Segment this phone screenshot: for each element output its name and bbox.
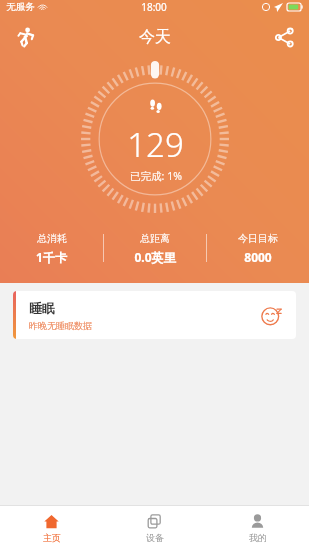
staticText: 设备 (146, 532, 164, 543)
staticText: 0.0英里 (134, 249, 176, 265)
button[interactable]: 总距离 (104, 232, 206, 265)
button[interactable]: 睡眠 (13, 291, 296, 339)
button[interactable]: 总消耗 (0, 232, 103, 265)
button[interactable]: 今日目标 (207, 232, 309, 265)
staticText: 已完成: 1% (130, 169, 182, 183)
staticText: 总消耗 (37, 232, 67, 245)
staticText: 129 (127, 122, 184, 167)
staticText: 无服务 (6, 1, 35, 13)
staticText: 18:00 (141, 0, 167, 14)
staticText: 昨晚无睡眠数据 (29, 320, 92, 331)
button[interactable]: 设备 (103, 506, 206, 550)
staticText: 今天 (139, 27, 171, 47)
button[interactable]: 主页 (0, 506, 103, 550)
button[interactable]: Share (267, 20, 301, 54)
staticText: 总距离 (140, 232, 170, 245)
button[interactable]: 我的 (206, 506, 309, 550)
button[interactable]: Activity (8, 20, 42, 54)
staticText: 8000 (244, 249, 272, 265)
staticText: 我的 (249, 532, 267, 543)
staticText: 主页 (43, 532, 61, 543)
staticText: 睡眠 (29, 300, 55, 316)
staticText: 今日目标 (238, 232, 278, 245)
staticText: 1千卡 (36, 249, 67, 265)
